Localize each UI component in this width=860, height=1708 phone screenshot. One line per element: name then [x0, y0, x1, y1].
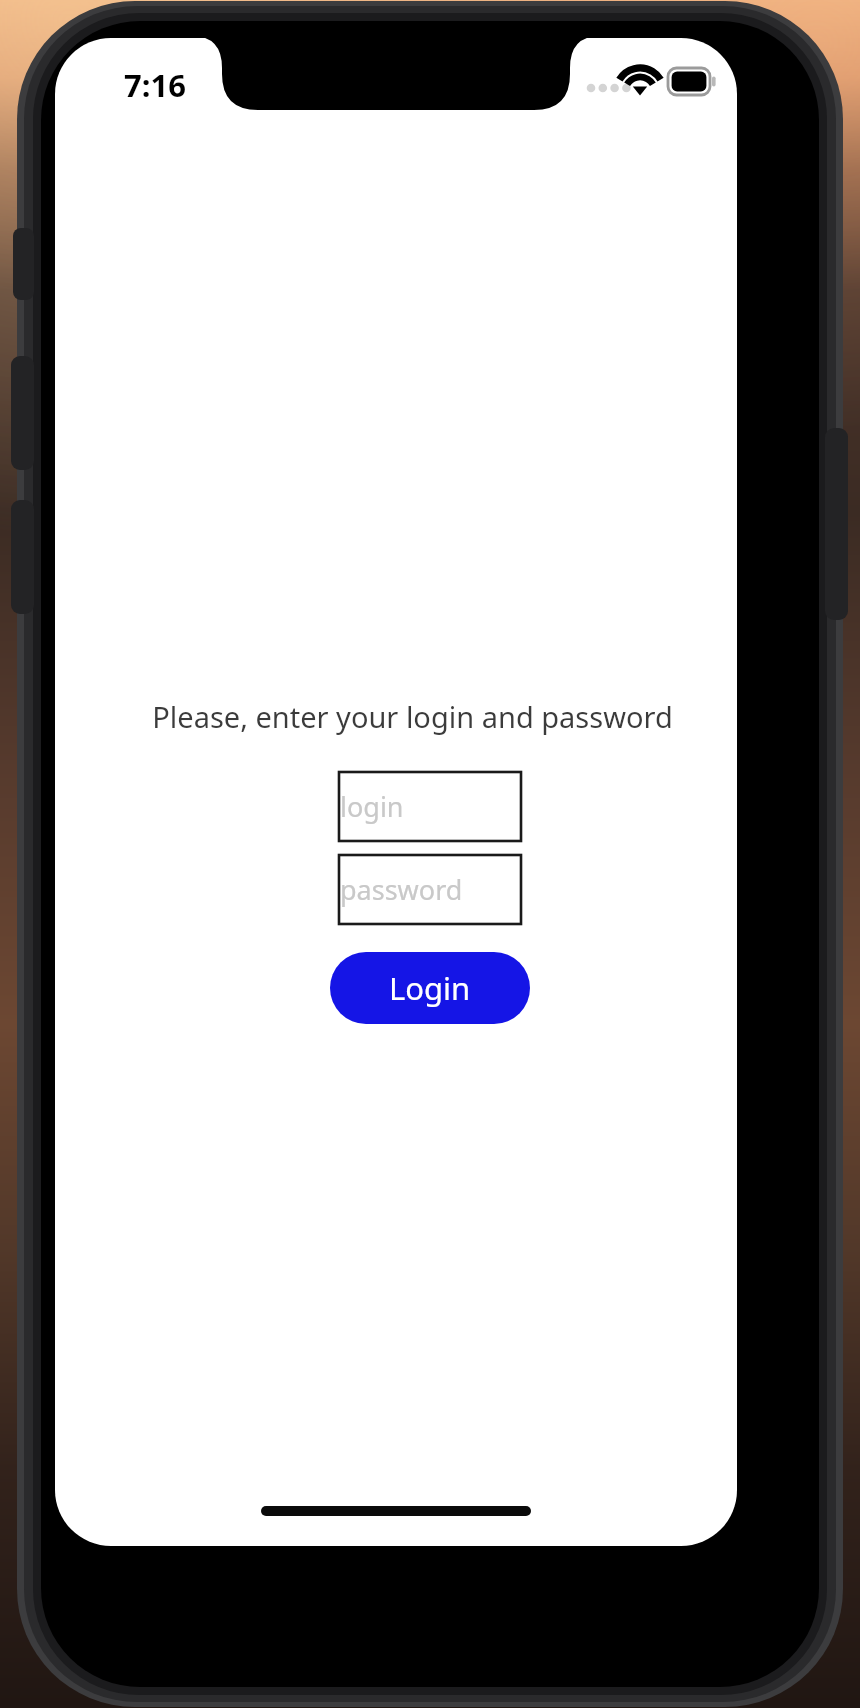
- button[interactable]: Login: [330, 952, 530, 1024]
- button[interactable]: password: [339, 855, 521, 924]
- staticText: 7:16: [124, 64, 186, 106]
- staticText: login: [340, 788, 404, 825]
- button[interactable]: login: [339, 772, 521, 841]
- staticText: Login: [389, 967, 471, 1009]
- staticText: password: [340, 871, 463, 908]
- staticText: Please, enter your login and password: [152, 697, 673, 736]
